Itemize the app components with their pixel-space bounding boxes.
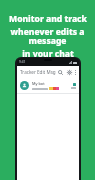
button[interactable]: More options	[74, 68, 76, 76]
staticText: in your chat	[22, 48, 74, 60]
staticText: whenever edits a message	[0, 26, 95, 47]
button[interactable]: Search	[56, 68, 65, 77]
staticText: Tracker Edit Msg	[20, 69, 56, 75]
staticText: Monitor and track	[9, 13, 87, 25]
button[interactable]: Settings	[65, 68, 74, 77]
staticText: 9:41	[19, 60, 26, 64]
button[interactable]: My bot	[17, 78, 79, 93]
staticText: My bot	[32, 81, 45, 86]
